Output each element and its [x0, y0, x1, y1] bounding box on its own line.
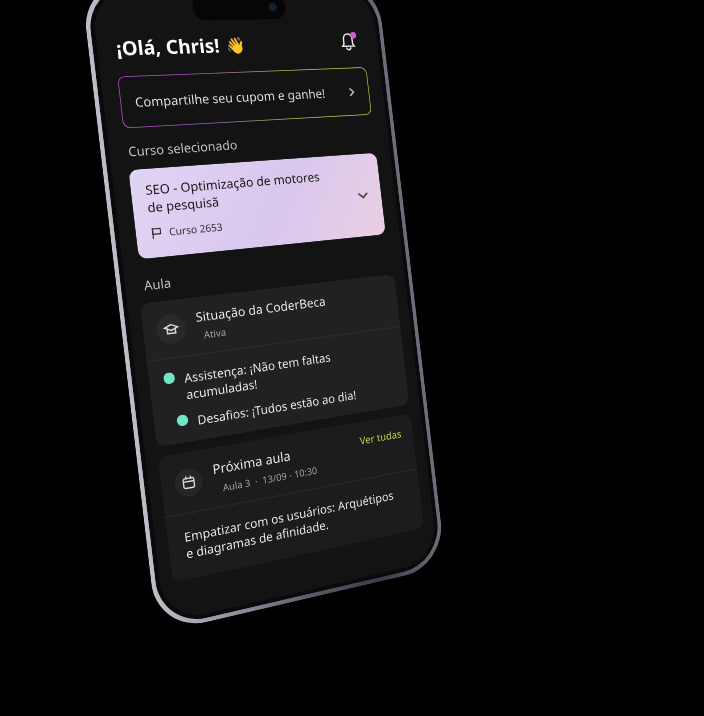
staticText: Próxima aula [211, 446, 292, 478]
button[interactable]: Notifications [333, 27, 363, 57]
button[interactable]: Próxima aula [173, 427, 405, 503]
staticText: Compartilhe seu cupom e ganhe! [134, 85, 326, 111]
button[interactable]: Situação da CoderBeca [155, 286, 388, 348]
staticText: Desafios: ¡Tudos estão ao dia! [196, 386, 358, 428]
button[interactable]: Ver tudas [359, 427, 402, 448]
button[interactable]: Compartilhe seu cupom e ganhe! [117, 67, 372, 128]
staticText: 👋 [225, 36, 246, 55]
staticText: Ativa [203, 325, 228, 341]
staticText: Empatizar com os usuários: Arquétipos e … [183, 487, 396, 563]
staticText: SEO - Optimização de motores de pesquisã [144, 168, 323, 216]
button[interactable]: SEO - Optimização de motores de pesquisã [128, 153, 386, 259]
staticText: Curso 2653 [168, 219, 223, 239]
staticText: Ver tudas [359, 427, 402, 448]
staticText: Aula [143, 274, 172, 295]
button[interactable]: Desafios: ¡Tudos estão ao dia! [176, 380, 398, 431]
staticText: Situação da CoderBeca [195, 293, 327, 326]
staticText: Curso selecionado [127, 136, 238, 160]
button[interactable]: Assistença: ¡Não tem faltas acumuladas! [163, 340, 395, 407]
staticText: Aula 3 · 13/09 - 10:30 [222, 464, 318, 494]
staticText: Assistença: ¡Não tem faltas acumuladas! [183, 348, 334, 403]
staticText: ¡Olá, Chris! [114, 32, 221, 62]
